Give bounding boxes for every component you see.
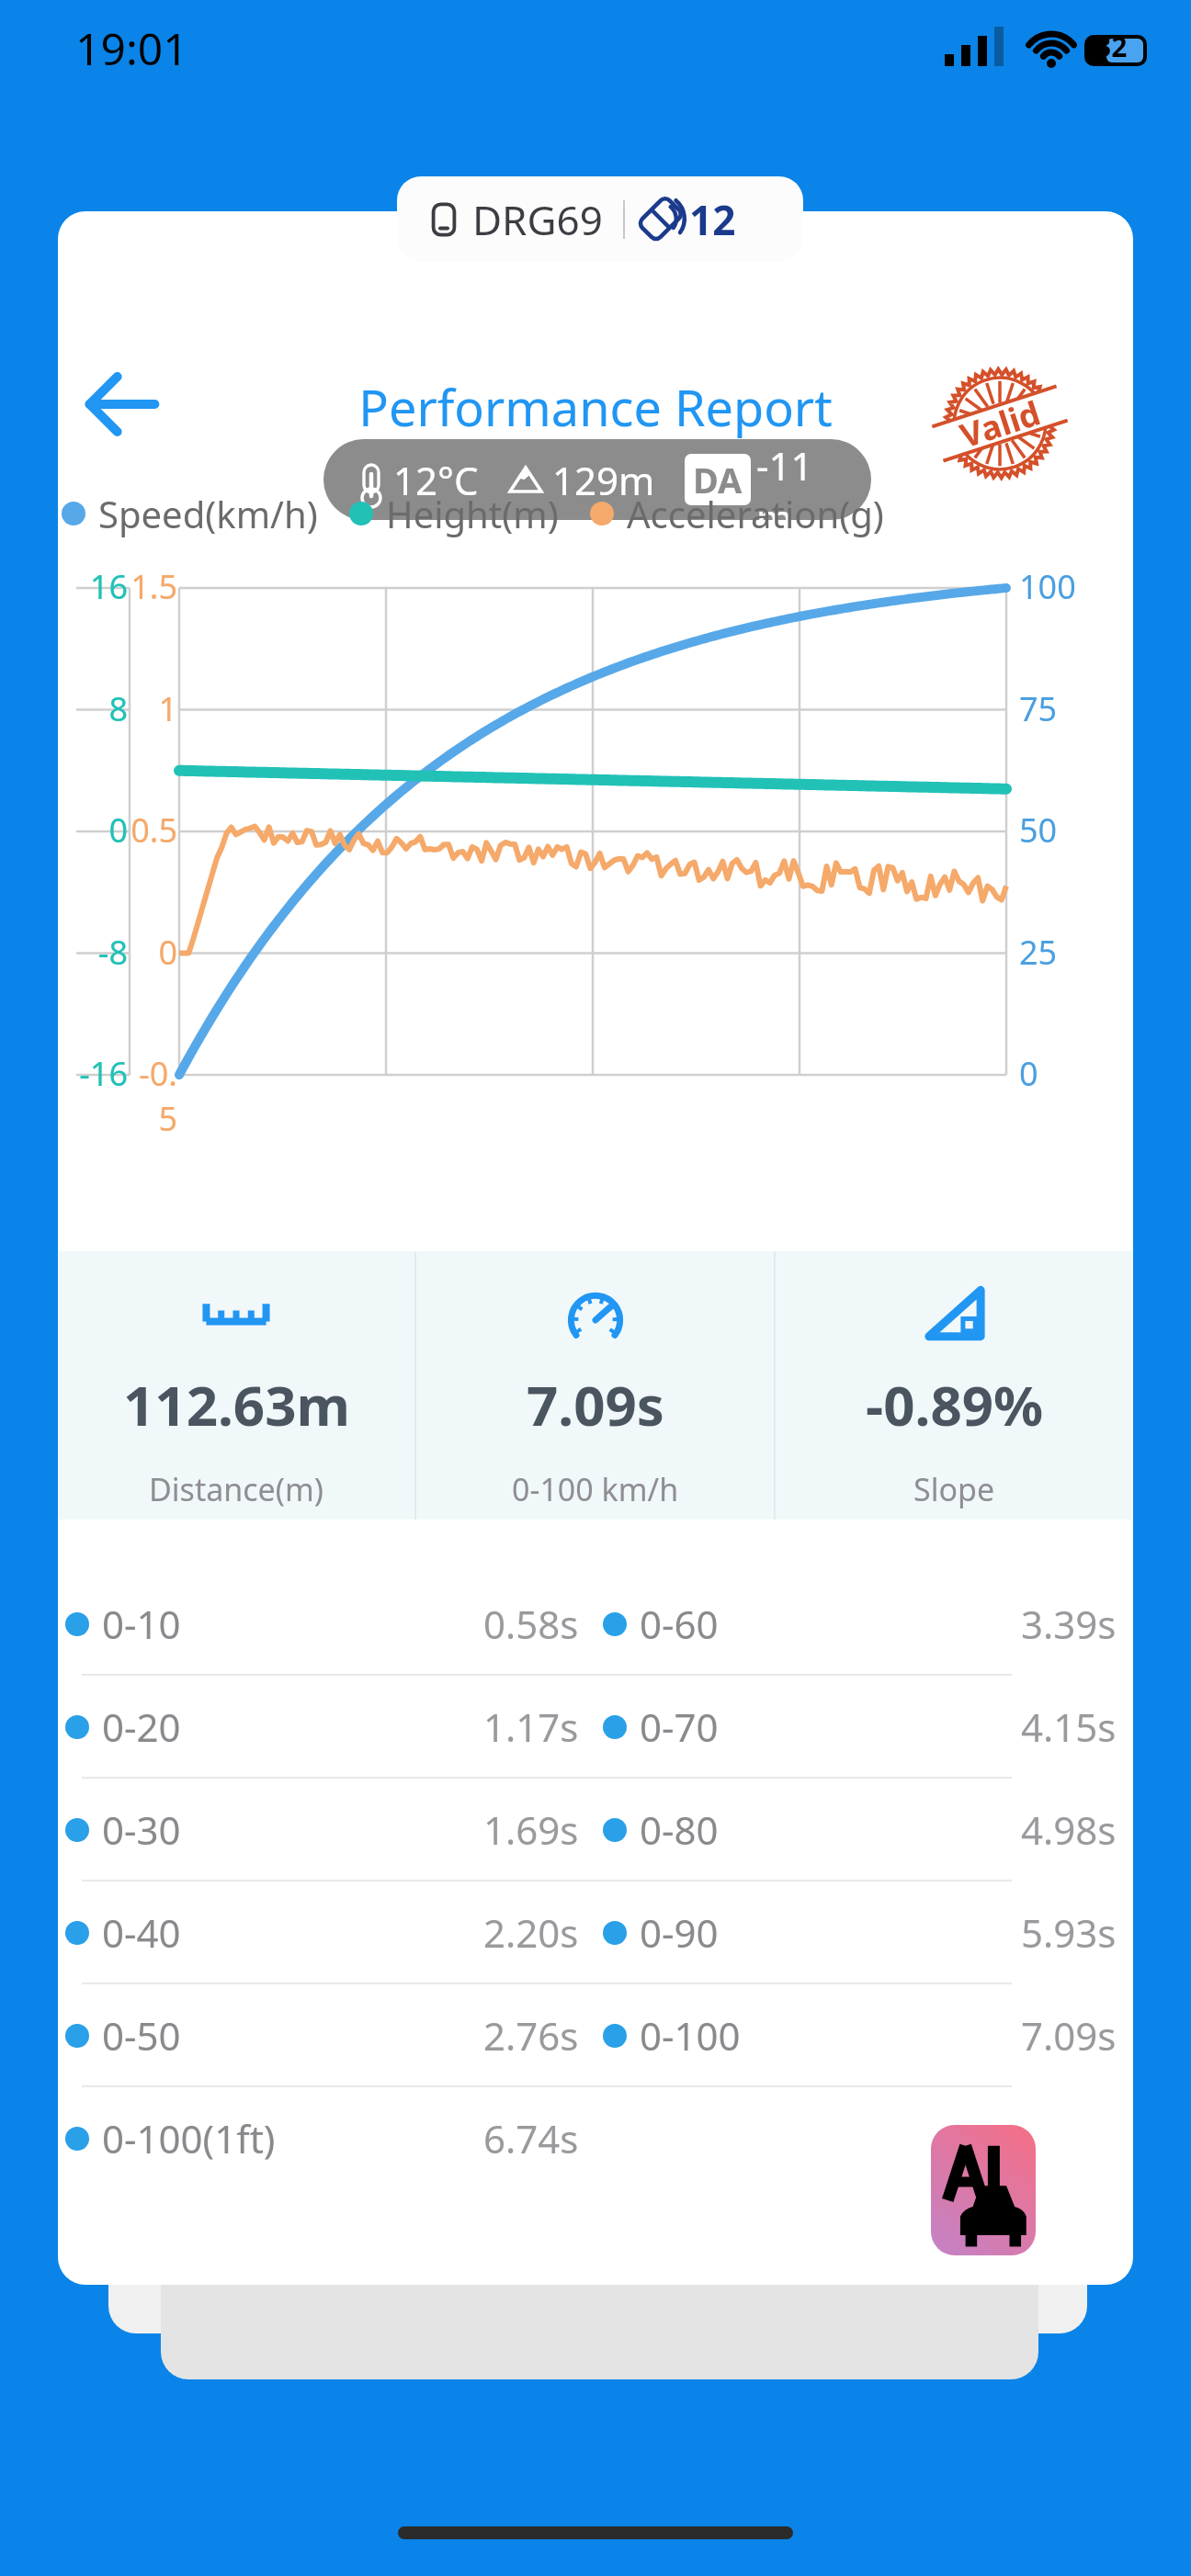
button[interactable]: 0-50: [58, 1984, 1133, 2085]
staticText: 0-10: [102, 1598, 181, 1650]
staticText: -8: [67, 930, 128, 975]
staticText: -11m: [756, 439, 840, 520]
staticText: 0: [1019, 1051, 1038, 1096]
staticText: Valid: [954, 390, 1046, 458]
button[interactable]: 0-100(1ft): [58, 2087, 1133, 2188]
staticText: -16: [67, 1051, 128, 1096]
staticText: 0-40: [102, 1906, 181, 1959]
staticText: 7.09s: [527, 1367, 664, 1442]
staticText: 100: [1019, 564, 1076, 609]
staticText: Performance Report: [58, 373, 1133, 441]
button[interactable]: 0-20: [58, 1676, 1133, 1777]
staticText: 1: [128, 686, 177, 731]
staticText: 3.39s: [1021, 1598, 1117, 1650]
staticText: 32: [1095, 28, 1128, 65]
staticText: -0.5: [128, 1051, 177, 1141]
staticText: 1.69s: [483, 1803, 579, 1856]
button[interactable]: DRG69: [397, 176, 803, 262]
staticText: -0.89%: [866, 1367, 1044, 1442]
staticText: 6.74s: [483, 2112, 579, 2164]
staticText: 25: [1019, 930, 1058, 975]
staticText: 0-80: [640, 1803, 719, 1856]
button[interactable]: 0-10: [58, 1573, 1133, 1674]
staticText: Speed(km/h): [98, 489, 318, 538]
staticText: Height(m): [386, 489, 559, 538]
staticText: 0-70: [640, 1700, 719, 1753]
staticText: 50: [1019, 808, 1058, 853]
staticText: 4.15s: [1021, 1700, 1117, 1753]
staticText: 0-90: [640, 1906, 719, 1959]
staticText: 0-30: [102, 1803, 181, 1856]
button[interactable]: AI assistant: [931, 2125, 1036, 2255]
staticText: 19:01: [75, 18, 188, 78]
staticText: 0-100: [640, 2009, 741, 2062]
staticText: Slope: [913, 1468, 995, 1510]
button[interactable]: Back: [74, 356, 170, 452]
staticText: Acceleration(g): [627, 489, 884, 538]
button[interactable]: -0.89%: [776, 1251, 1133, 1520]
staticText: 0: [67, 808, 128, 853]
staticText: 4.98s: [1021, 1803, 1117, 1856]
staticText: 1.5: [128, 564, 177, 609]
staticText: DRG69: [472, 192, 603, 247]
button[interactable]: 0-30: [58, 1779, 1133, 1880]
staticText: 75: [1019, 686, 1058, 731]
staticText: 12: [689, 192, 736, 247]
staticText: 0-100 km/h: [512, 1468, 679, 1510]
staticText: 112.63m: [123, 1367, 350, 1442]
staticText: 0: [128, 930, 177, 975]
staticText: 129m: [552, 454, 655, 506]
button[interactable]: 0-40: [58, 1881, 1133, 1983]
staticText: 0.58s: [483, 1598, 579, 1650]
staticText: 8: [67, 686, 128, 731]
staticText: DA: [693, 456, 743, 503]
staticText: 0-60: [640, 1598, 719, 1650]
staticText: 7.09s: [1021, 2009, 1117, 2062]
staticText: 2.76s: [483, 2009, 579, 2062]
staticText: 1.17s: [483, 1700, 579, 1753]
staticText: 5.93s: [1021, 1906, 1117, 1959]
button[interactable]: 112.63m: [58, 1251, 414, 1520]
staticText: 16: [67, 564, 128, 609]
staticText: 0.5: [128, 808, 177, 853]
staticText: 12°C: [393, 454, 479, 506]
staticText: 0-20: [102, 1700, 181, 1753]
staticText: 0-100(1ft): [102, 2112, 276, 2164]
staticText: 2.20s: [483, 1906, 579, 1959]
button[interactable]: 7.09s: [416, 1251, 774, 1520]
staticText: Distance(m): [149, 1468, 323, 1510]
button[interactable]: 12°C: [323, 439, 871, 520]
staticText: 0-50: [102, 2009, 181, 2062]
